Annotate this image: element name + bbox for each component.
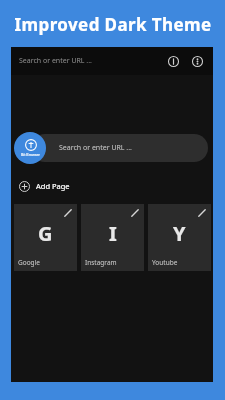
button[interactable]: Search or enter URL ...: [11, 47, 213, 75]
button[interactable]: Y: [148, 204, 211, 271]
staticText: Google: [18, 258, 40, 267]
staticText: G: [38, 220, 53, 247]
staticText: Search or enter URL ...: [19, 56, 164, 66]
staticText: Youtube: [152, 258, 178, 267]
button[interactable]: Add Page: [19, 177, 70, 195]
button[interactable]: More options: [188, 52, 206, 70]
staticText: Search or enter URL ...: [59, 143, 132, 153]
button[interactable]: Browser home: [14, 132, 46, 164]
staticText: Bit Browser: [21, 152, 40, 157]
button[interactable]: Search or enter URL ...: [31, 134, 208, 162]
button[interactable]: Tab count: [164, 52, 182, 70]
staticText: Add Page: [36, 181, 70, 191]
button[interactable]: I: [81, 204, 144, 271]
button[interactable]: G: [14, 204, 77, 271]
staticText: Y: [173, 220, 186, 247]
staticText: Improved Dark Theme: [14, 13, 212, 36]
staticText: I: [109, 220, 117, 247]
staticText: Instagram: [85, 258, 117, 267]
